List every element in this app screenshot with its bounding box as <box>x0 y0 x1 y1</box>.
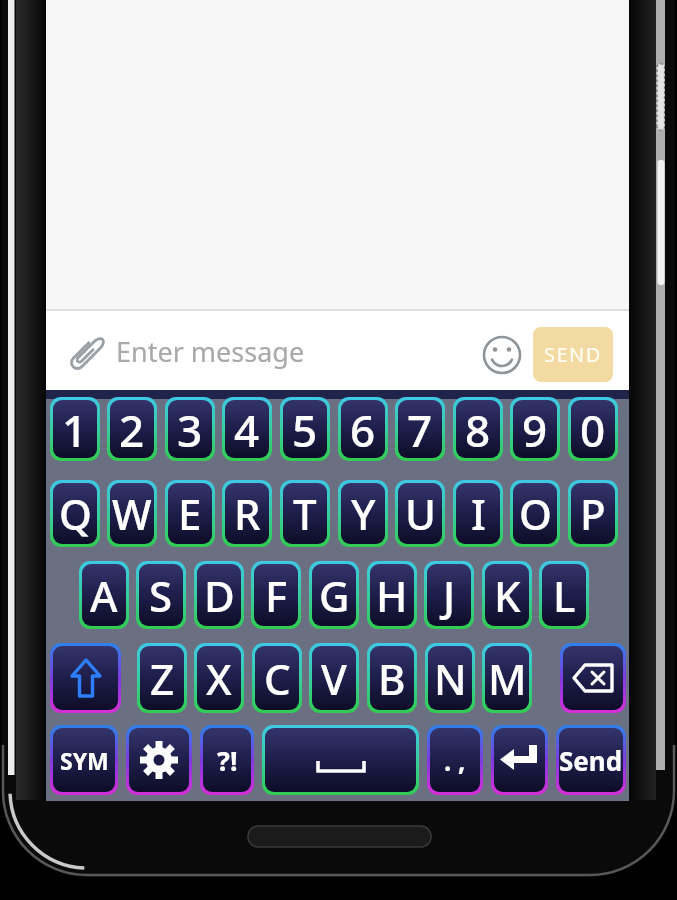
button[interactable]: 8 <box>456 400 500 458</box>
staticText: V <box>321 650 347 707</box>
staticText: W <box>112 485 152 542</box>
staticText: Send <box>559 743 623 778</box>
staticText: L <box>553 567 576 624</box>
staticText: D <box>204 567 235 624</box>
button[interactable]: U <box>398 483 442 544</box>
staticText: Q <box>59 485 92 542</box>
button[interactable]: V <box>312 646 356 710</box>
staticText: I <box>471 485 486 542</box>
button[interactable]: N <box>428 646 472 710</box>
staticText: A <box>90 567 118 624</box>
staticText: SEND <box>544 341 602 368</box>
button[interactable]: B <box>370 646 414 710</box>
button[interactable]: C <box>255 646 299 710</box>
button[interactable]: T <box>283 483 327 544</box>
staticText: 0 <box>580 400 606 458</box>
button[interactable]: H <box>370 564 414 626</box>
button[interactable]: P <box>571 483 615 544</box>
button[interactable] <box>482 335 522 375</box>
button[interactable]: 4 <box>225 400 269 458</box>
button[interactable] <box>53 646 118 710</box>
staticText: ?! <box>217 742 238 779</box>
button[interactable] <box>265 728 416 792</box>
button[interactable]: Enter message <box>116 325 436 377</box>
staticText: 8 <box>465 400 491 458</box>
staticText: U <box>405 485 436 542</box>
staticText: J <box>443 567 456 624</box>
staticText: SYM <box>60 745 109 776</box>
button[interactable]: R <box>225 483 269 544</box>
button[interactable]: 7 <box>398 400 442 458</box>
button[interactable] <box>129 728 189 792</box>
button[interactable]: . , <box>430 728 480 792</box>
staticText: O <box>519 485 552 542</box>
staticText: S <box>149 567 173 624</box>
button[interactable]: X <box>197 646 241 710</box>
button[interactable]: Y <box>341 483 385 544</box>
staticText: Z <box>150 650 175 707</box>
button[interactable]: K <box>485 564 529 626</box>
button[interactable]: 6 <box>341 400 385 458</box>
staticText: N <box>434 650 467 707</box>
button[interactable] <box>563 646 623 710</box>
staticText: T <box>293 485 317 542</box>
staticText: Enter message <box>116 333 305 370</box>
button[interactable]: SEND <box>533 327 613 382</box>
button[interactable]: Q <box>53 483 97 544</box>
staticText: B <box>378 650 406 707</box>
staticText: 9 <box>522 400 548 458</box>
button[interactable]: 5 <box>283 400 327 458</box>
button[interactable]: J <box>427 564 471 626</box>
staticText: 2 <box>119 400 145 458</box>
staticText: Y <box>351 485 376 542</box>
button[interactable]: 2 <box>110 400 154 458</box>
button[interactable]: 1 <box>53 400 97 458</box>
staticText: . , <box>444 743 466 778</box>
staticText: 6 <box>350 400 376 458</box>
button[interactable]: O <box>513 483 557 544</box>
staticText: K <box>494 567 521 624</box>
staticText: H <box>376 567 408 624</box>
staticText: 3 <box>177 400 203 458</box>
button[interactable]: F <box>254 564 298 626</box>
button[interactable]: A <box>82 564 126 626</box>
staticText: P <box>580 485 606 542</box>
button[interactable]: Z <box>140 646 184 710</box>
button[interactable]: L <box>542 564 586 626</box>
button[interactable]: W <box>110 483 154 544</box>
staticText: F <box>265 567 288 624</box>
staticText: 7 <box>407 400 433 458</box>
button[interactable]: S <box>139 564 183 626</box>
staticText: C <box>264 650 291 707</box>
button[interactable]: 0 <box>571 400 615 458</box>
button[interactable]: E <box>168 483 212 544</box>
staticText: 1 <box>62 400 88 458</box>
staticText: X <box>206 650 232 707</box>
button[interactable]: I <box>456 483 500 544</box>
staticText: 4 <box>234 400 260 458</box>
staticText: 5 <box>292 400 318 458</box>
button[interactable]: D <box>197 564 241 626</box>
button[interactable]: ?! <box>203 728 251 792</box>
staticText: G <box>319 567 350 624</box>
button[interactable]: 3 <box>168 400 212 458</box>
button[interactable]: Send <box>559 728 623 792</box>
button[interactable]: SYM <box>53 728 115 792</box>
staticText: M <box>488 650 527 707</box>
button[interactable] <box>60 328 112 380</box>
staticText: R <box>234 485 261 542</box>
button[interactable]: G <box>312 564 356 626</box>
button[interactable] <box>494 728 545 792</box>
staticText: E <box>178 485 202 542</box>
button[interactable]: M <box>485 646 529 710</box>
button[interactable]: 9 <box>513 400 557 458</box>
